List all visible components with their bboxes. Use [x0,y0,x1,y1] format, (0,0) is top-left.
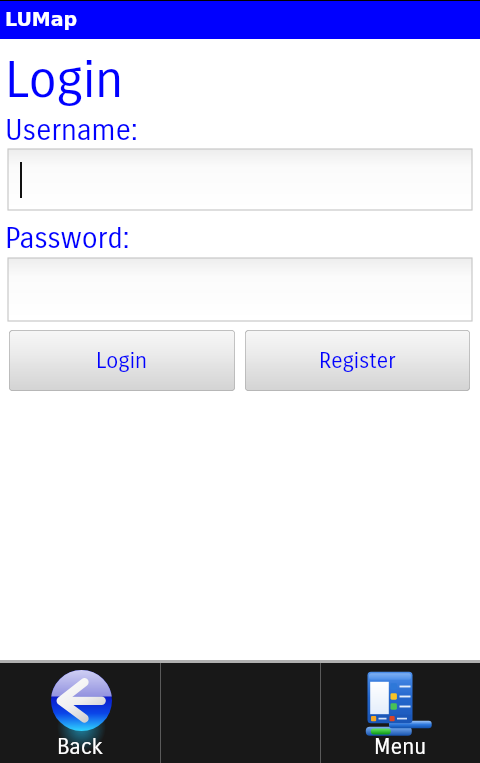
staticText: Login [96,348,148,374]
staticText: Register [319,348,396,374]
staticText: Menu [374,734,427,760]
button[interactable] [160,663,320,763]
button[interactable]: Register [245,330,470,391]
button[interactable]: Login [9,330,235,391]
staticText: LUMap [5,8,78,30]
button[interactable]: Back [0,663,160,763]
staticText: Password: [5,221,130,256]
button[interactable]: LUMap [0,1,480,39]
staticText: Back [57,734,103,760]
staticText: Login [5,50,124,111]
button[interactable] [8,258,472,321]
button[interactable] [8,149,472,210]
button[interactable]: Menu [320,663,480,763]
staticText: Username: [5,113,138,148]
